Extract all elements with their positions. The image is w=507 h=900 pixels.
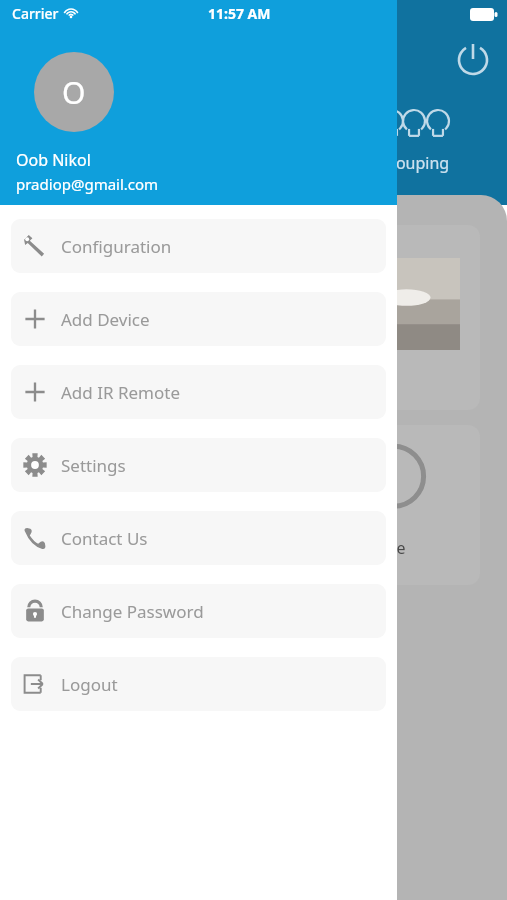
- staticText: Logout: [61, 673, 118, 696]
- staticText: Settings: [61, 454, 126, 477]
- staticText: Change Password: [61, 600, 204, 623]
- staticText: Add Device: [61, 308, 150, 331]
- button[interactable]: Change Password: [11, 584, 386, 638]
- button[interactable]: Settings: [11, 438, 386, 492]
- button[interactable]: Add IR Remote: [11, 365, 386, 419]
- button[interactable]: Contact Us: [11, 511, 386, 565]
- button[interactable]: Logout: [11, 657, 386, 711]
- staticText: 11:57 AM: [208, 4, 271, 23]
- staticText: Contact Us: [61, 527, 148, 550]
- staticText: Configuration: [61, 235, 172, 258]
- staticText: Carrier: [12, 4, 59, 23]
- staticText: Grouping: [378, 152, 450, 174]
- staticText: Add IR Remote: [61, 381, 181, 404]
- button[interactable]: Add Device: [300, 425, 480, 585]
- staticText: pradiop@gmail.com: [16, 174, 159, 194]
- staticText: Add Device: [322, 537, 406, 559]
- button[interactable]: [300, 225, 480, 410]
- button[interactable]: O: [34, 52, 114, 132]
- button[interactable]: Configuration: [11, 219, 386, 273]
- staticText: Oob Nikol: [16, 149, 91, 171]
- button[interactable]: Power: [455, 42, 491, 78]
- button[interactable]: Add Device: [11, 292, 386, 346]
- staticText: O: [62, 72, 86, 113]
